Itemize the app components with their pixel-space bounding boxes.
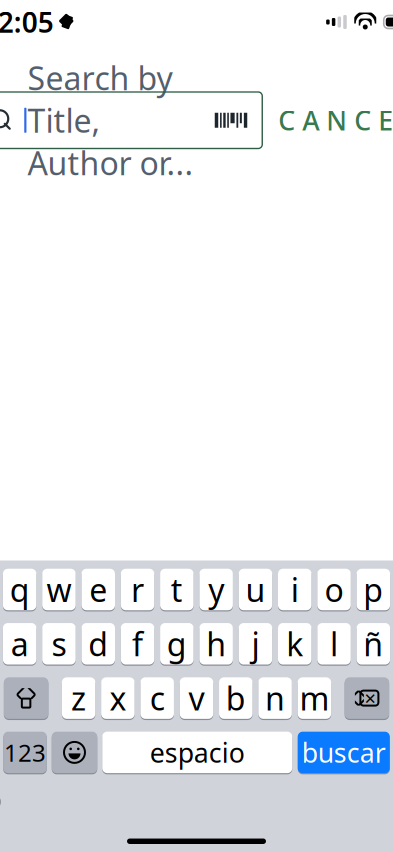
staticText: v bbox=[188, 677, 204, 719]
staticText: w bbox=[46, 568, 71, 611]
staticText: y bbox=[208, 568, 224, 611]
button[interactable]: Search by Title, Author or... bbox=[0, 92, 262, 148]
staticText: r bbox=[131, 568, 144, 611]
staticText: buscar bbox=[302, 735, 386, 770]
button[interactable]: r bbox=[121, 568, 154, 611]
button[interactable]: t bbox=[160, 568, 194, 611]
button[interactable]: u bbox=[239, 568, 272, 611]
button[interactable]: h bbox=[199, 622, 233, 665]
button[interactable]: i bbox=[278, 568, 311, 611]
button[interactable]: x bbox=[101, 677, 135, 720]
staticText: p bbox=[363, 568, 383, 611]
staticText: o bbox=[325, 568, 344, 611]
staticText: C A N C E L bbox=[278, 102, 393, 138]
button[interactable]: q bbox=[3, 568, 36, 611]
button[interactable]: y bbox=[199, 568, 233, 611]
button[interactable]: z bbox=[62, 677, 95, 720]
button[interactable]: buscar bbox=[298, 731, 390, 774]
button[interactable]: f bbox=[121, 622, 154, 665]
button[interactable]: j bbox=[239, 622, 272, 665]
staticText: m bbox=[299, 677, 329, 719]
button[interactable]: Shift bbox=[4, 677, 48, 720]
staticText: q bbox=[10, 568, 30, 611]
button[interactable]: 123 bbox=[3, 731, 47, 774]
button[interactable]: espacio bbox=[102, 731, 292, 774]
button[interactable]: w bbox=[42, 568, 76, 611]
staticText: t bbox=[171, 568, 183, 611]
button[interactable]: d bbox=[81, 622, 115, 665]
button[interactable]: v bbox=[180, 677, 213, 720]
staticText: j bbox=[251, 623, 259, 665]
button[interactable]: s bbox=[42, 622, 76, 665]
button[interactable]: c bbox=[140, 677, 174, 720]
button[interactable]: Emoji bbox=[52, 731, 97, 774]
staticText: s bbox=[51, 623, 66, 665]
button[interactable]: e bbox=[81, 568, 115, 611]
staticText: g bbox=[167, 623, 187, 665]
button[interactable]: p bbox=[357, 568, 390, 611]
staticText: b bbox=[226, 677, 246, 719]
button[interactable]: k bbox=[278, 622, 311, 665]
staticText: × bbox=[364, 685, 375, 711]
button[interactable]: n bbox=[258, 677, 292, 720]
staticText: i bbox=[291, 568, 299, 611]
button[interactable]: b bbox=[219, 677, 252, 720]
button[interactable]: Delete bbox=[345, 677, 389, 720]
button[interactable]: a bbox=[3, 622, 36, 665]
button[interactable]: l bbox=[317, 622, 351, 665]
staticText: c bbox=[150, 677, 165, 719]
staticText: 123 bbox=[4, 736, 46, 768]
staticText: u bbox=[245, 568, 265, 611]
button[interactable]: m bbox=[298, 677, 331, 720]
staticText: espacio bbox=[150, 735, 245, 770]
staticText: k bbox=[286, 623, 303, 665]
staticText: 12:05 bbox=[0, 3, 54, 41]
button[interactable]: g bbox=[160, 622, 194, 665]
staticText: ñ bbox=[363, 623, 383, 665]
staticText: d bbox=[88, 623, 108, 665]
button[interactable]: ñ bbox=[357, 622, 390, 665]
staticText: x bbox=[109, 677, 126, 719]
staticText: l bbox=[330, 623, 338, 665]
staticText: e bbox=[89, 568, 107, 611]
staticText: h bbox=[206, 623, 226, 665]
staticText: n bbox=[265, 677, 285, 719]
button[interactable]: Next keyboard bbox=[0, 785, 2, 819]
button[interactable]: o bbox=[317, 568, 351, 611]
staticText: f bbox=[132, 623, 143, 665]
staticText: Search by Title, Author or... bbox=[27, 56, 193, 184]
button[interactable]: C A N C E L bbox=[270, 92, 393, 148]
staticText: a bbox=[11, 623, 29, 665]
staticText: z bbox=[71, 677, 86, 719]
